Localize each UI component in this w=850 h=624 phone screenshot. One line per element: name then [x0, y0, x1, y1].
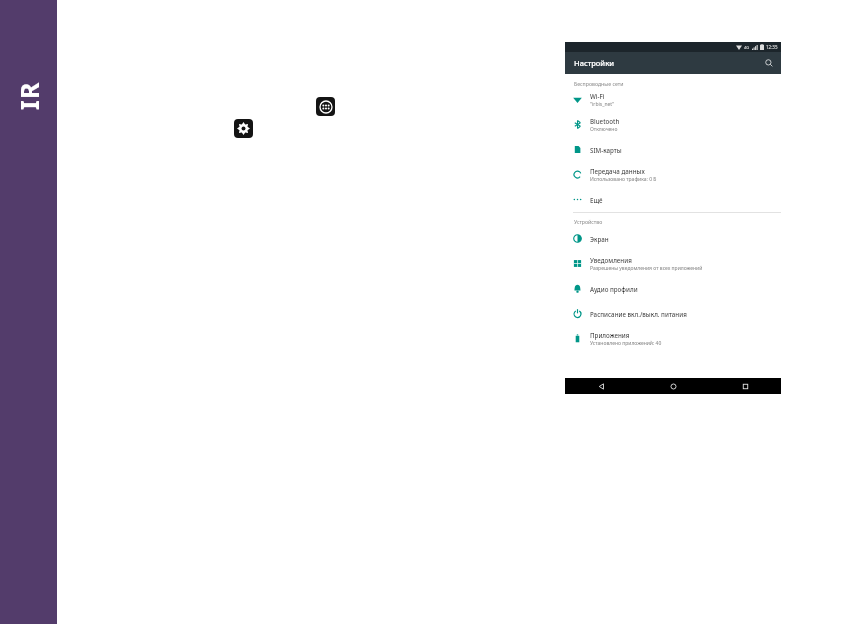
staticText: "irbis_net": [590, 101, 615, 108]
staticText: 12:35: [766, 44, 778, 50]
button[interactable]: Settings: [234, 119, 253, 138]
button[interactable]: Приложения: [565, 326, 781, 351]
button[interactable]: Расписание вкл./выкл. питания: [565, 301, 781, 326]
staticText: Уведомления: [590, 256, 632, 264]
staticText: Аудио профили: [590, 285, 638, 293]
button[interactable]: Уведомления: [565, 251, 781, 276]
button[interactable]: Экран: [565, 226, 781, 251]
staticText: Bluetooth: [590, 117, 620, 125]
staticText: Беспроводные сети: [574, 80, 624, 87]
staticText: IRBIS: [12, 80, 46, 110]
button[interactable]: Bluetooth: [565, 112, 781, 137]
staticText: Ещё: [590, 196, 603, 204]
staticText: Передача данных: [590, 167, 645, 175]
staticText: Использовано трафика: 0 Б: [590, 176, 657, 183]
button[interactable]: Ещё: [565, 187, 781, 212]
staticText: 4G: [744, 45, 750, 50]
button[interactable]: Аудио профили: [565, 276, 781, 301]
button[interactable]: Recent apps: [709, 378, 781, 394]
staticText: Wi-Fi: [590, 92, 605, 100]
staticText: Экран: [590, 235, 609, 243]
staticText: Устройство: [574, 218, 603, 225]
button[interactable]: SIM-карты: [565, 137, 781, 162]
staticText: Расписание вкл./выкл. питания: [590, 310, 687, 318]
button[interactable]: All apps: [316, 97, 335, 116]
button[interactable]: Search: [762, 56, 776, 70]
staticText: Разрешены уведомления от всех приложений: [590, 265, 703, 272]
staticText: Отключено: [590, 126, 618, 133]
button[interactable]: Wi-Fi: [565, 87, 781, 112]
staticText: SIM-карты: [590, 146, 622, 154]
button[interactable]: Передача данных: [565, 162, 781, 187]
staticText: Установлено приложений: 40: [590, 340, 662, 347]
staticText: Настройки: [574, 58, 615, 68]
staticText: Приложения: [590, 331, 630, 339]
button[interactable]: Back: [565, 378, 637, 394]
button[interactable]: Home: [637, 378, 709, 394]
